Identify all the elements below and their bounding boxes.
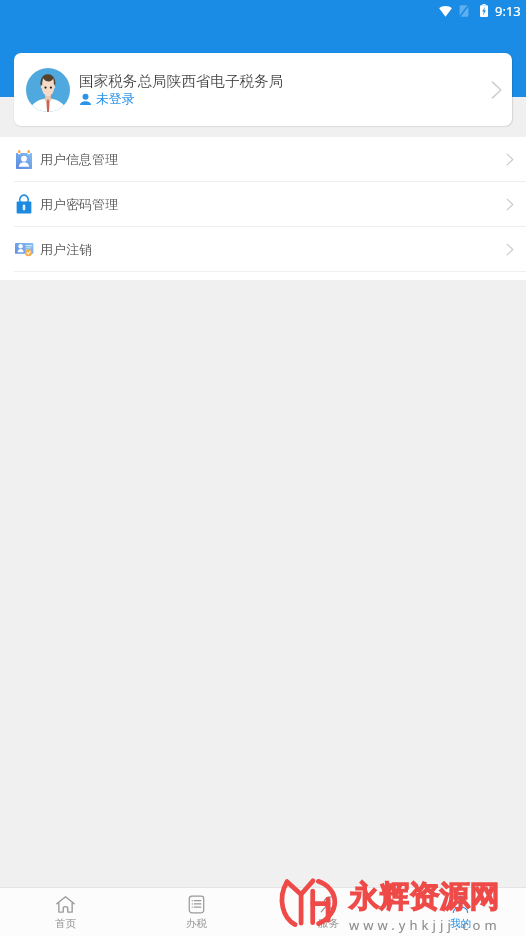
staticText: 办税 xyxy=(186,917,207,930)
button[interactable]: 服务 xyxy=(262,888,394,936)
button[interactable]: 首页 xyxy=(0,888,131,936)
staticText: 未登录 xyxy=(96,91,135,107)
staticText: 用户密码管理 xyxy=(40,196,118,212)
button[interactable]: 我的 xyxy=(394,888,526,936)
staticText: 永辉资源网 xyxy=(349,878,499,916)
button[interactable]: 用户注销 xyxy=(0,227,526,271)
staticText: 首页 xyxy=(55,917,76,930)
staticText: 用户信息管理 xyxy=(40,151,118,167)
staticText: www.yhkjjj.com xyxy=(349,916,501,934)
button[interactable]: 用户密码管理 xyxy=(0,182,526,226)
staticText: 国家税务总局陕西省电子税务局 xyxy=(79,72,284,90)
staticText: 服务 xyxy=(318,917,339,930)
staticText: 9:13 xyxy=(495,2,521,20)
staticText: 我的 xyxy=(450,917,471,930)
button[interactable]: 办税 xyxy=(131,888,262,936)
button[interactable]: 国家税务总局陕西省电子税务局 xyxy=(14,53,512,126)
staticText: 用户注销 xyxy=(40,241,92,257)
button[interactable]: 用户信息管理 xyxy=(0,137,526,181)
